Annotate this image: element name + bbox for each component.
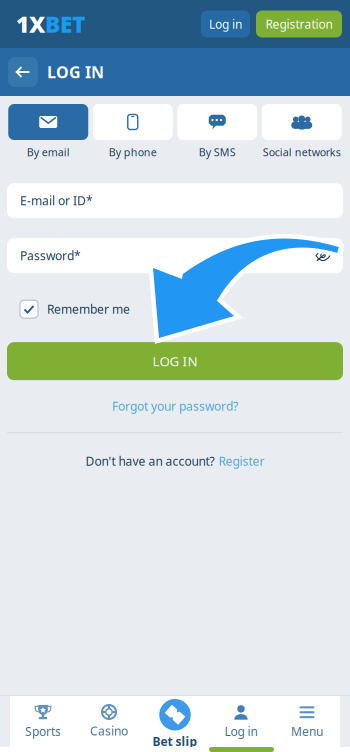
button[interactable]: Register	[218, 453, 264, 469]
button[interactable]: Social networks	[262, 104, 342, 159]
staticText: Remember me	[47, 301, 130, 317]
staticText: Sports	[25, 723, 61, 739]
staticText: E-mail or ID*	[20, 193, 93, 209]
button[interactable]: 1X	[8, 9, 85, 39]
staticText: Log in	[209, 16, 242, 32]
button[interactable]: Log in	[201, 10, 250, 37]
staticText: Bet slip	[152, 733, 197, 749]
button[interactable]: Back	[8, 57, 38, 87]
button[interactable]: Casino	[76, 693, 142, 750]
staticText: Password*	[20, 248, 81, 264]
button[interactable]: By phone	[93, 104, 173, 159]
staticText: Forgot your password?	[112, 398, 238, 414]
staticText: By SMS	[199, 145, 236, 159]
staticText: Casino	[90, 723, 128, 739]
staticText: Don't have an account?	[85, 453, 214, 469]
button[interactable]: Bet slip	[142, 693, 208, 750]
staticText: Social networks	[263, 145, 341, 159]
staticText: LOG IN	[47, 61, 104, 83]
staticText: By phone	[109, 145, 157, 159]
staticText: By email	[27, 145, 70, 159]
button[interactable]: Remember me	[0, 300, 350, 318]
staticText: 1X	[16, 9, 45, 39]
button[interactable]: Registration	[256, 10, 342, 37]
staticText: Registration	[265, 16, 332, 32]
button[interactable]: Sports	[10, 693, 76, 750]
staticText: LOG IN	[152, 352, 197, 370]
staticText: BET	[45, 9, 85, 39]
button[interactable]: By email	[8, 104, 88, 159]
button[interactable]: Menu	[274, 693, 340, 750]
button[interactable]: LOG IN	[0, 342, 350, 380]
button[interactable]: Show password	[316, 250, 330, 261]
staticText: Register	[218, 453, 264, 469]
staticText: Menu	[291, 723, 323, 739]
staticText: Log in	[224, 723, 257, 739]
button[interactable]: Forgot your password?	[112, 394, 238, 418]
button[interactable]: By SMS	[177, 104, 257, 159]
button[interactable]: Log in	[208, 693, 274, 750]
